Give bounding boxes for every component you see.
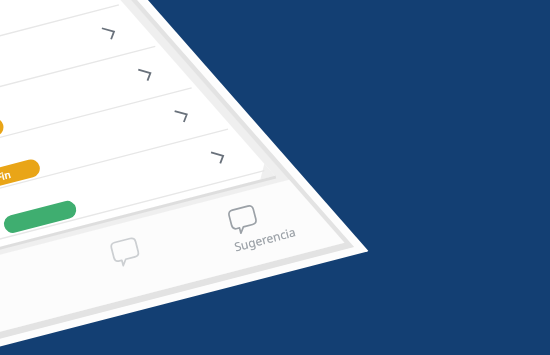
button[interactable]: Jornadas list shown on a tilted phone bbox=[0, 0, 550, 355]
